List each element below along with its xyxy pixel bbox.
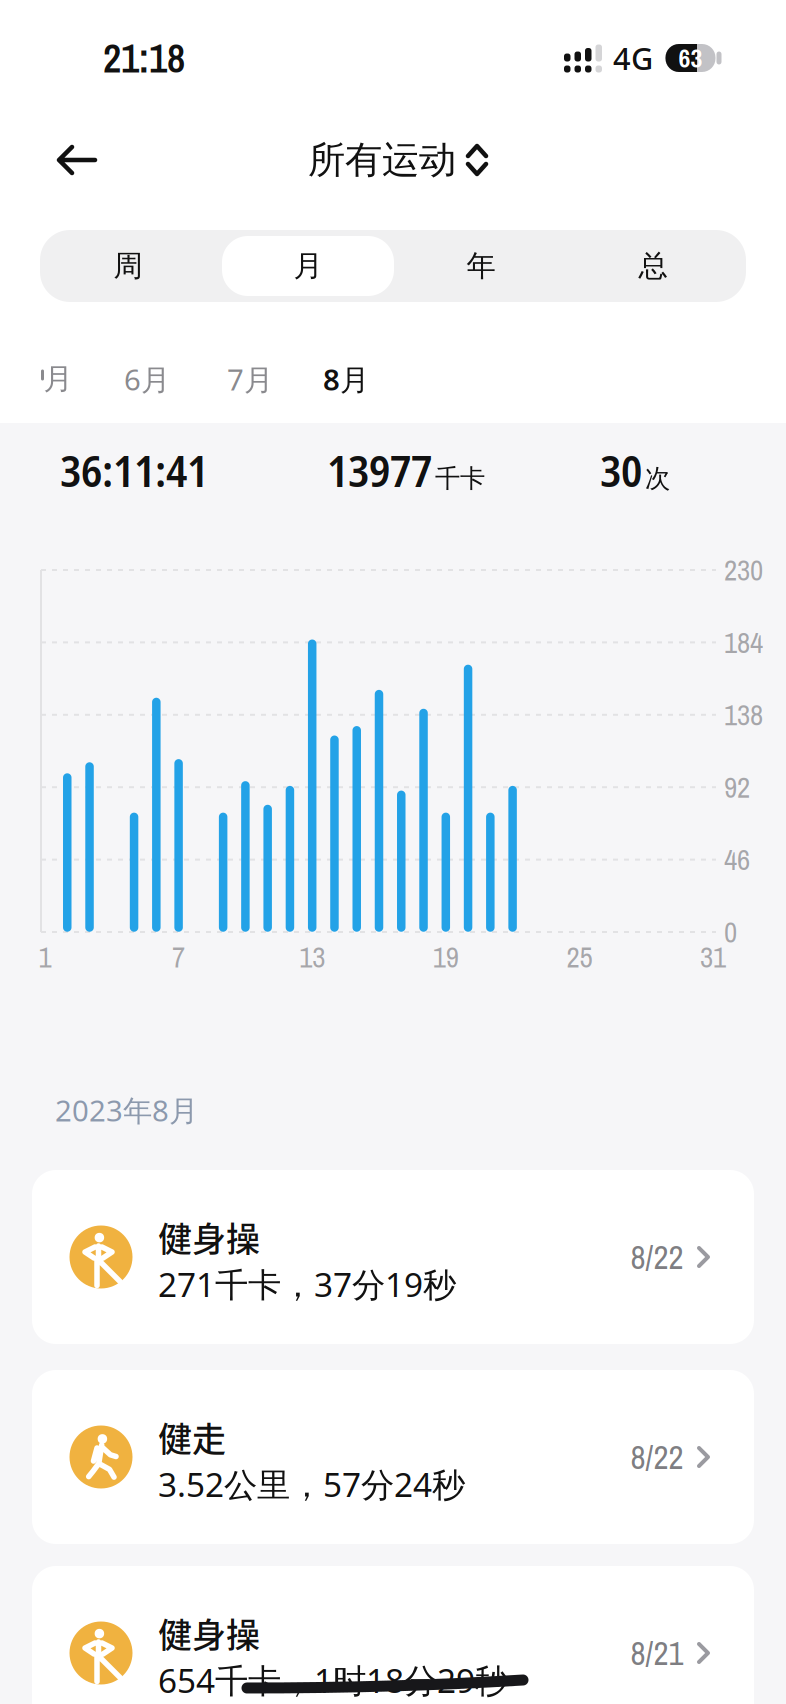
staticText: 46 <box>724 840 750 879</box>
staticText: 总 <box>638 248 667 284</box>
button[interactable]: 周 <box>42 230 214 302</box>
staticText: 13 <box>299 937 325 977</box>
staticText: 8/21 <box>630 1631 683 1675</box>
button[interactable]: 返回 <box>57 144 97 176</box>
staticText: 1 <box>38 937 51 977</box>
staticText: 月 <box>43 361 72 397</box>
staticText: 4G <box>613 38 653 78</box>
staticText: 0 <box>724 912 737 952</box>
staticText: 230 <box>724 550 763 590</box>
staticText: 健走 <box>158 1412 226 1462</box>
staticText: 8月 <box>323 359 369 398</box>
staticText: 30 <box>600 440 642 500</box>
staticText: 7月 <box>227 359 273 398</box>
button[interactable]: 健身操 <box>32 1170 754 1344</box>
button[interactable]: 月 <box>43 349 72 409</box>
staticText: 所有运动 <box>308 137 456 183</box>
staticText: 19 <box>433 937 459 977</box>
staticText: 千卡 <box>435 463 485 494</box>
staticText: 年 <box>466 248 495 284</box>
staticText: 63 <box>678 40 702 75</box>
button[interactable]: 年 <box>395 230 567 302</box>
staticText: 月 <box>293 248 322 284</box>
staticText: 2023年8月 <box>55 1090 198 1129</box>
button[interactable]: 总 <box>567 230 739 302</box>
staticText: 271千卡，37分19秒 <box>158 1262 456 1306</box>
staticText: 138 <box>724 695 763 734</box>
button[interactable]: 健身操 <box>32 1566 754 1704</box>
staticText: 次 <box>645 463 670 494</box>
staticText: 92 <box>724 768 750 807</box>
staticText: 21:18 <box>103 31 185 85</box>
staticText: 健身操 <box>158 1212 260 1262</box>
staticText: 8/22 <box>630 1235 683 1279</box>
staticText: 654千卡，1时18分29秒 <box>158 1658 508 1702</box>
staticText: 184 <box>724 623 763 662</box>
staticText: 8/22 <box>630 1435 683 1479</box>
staticText: 13977 <box>327 440 432 500</box>
button[interactable]: 健走 <box>32 1370 754 1544</box>
staticText: 3.52公里，57分24秒 <box>158 1462 465 1506</box>
staticText: 周 <box>113 248 142 284</box>
button[interactable]: 月 <box>222 230 394 302</box>
staticText: 36:11:41 <box>60 440 208 500</box>
button[interactable]: 所有运动 <box>308 137 488 183</box>
staticText: 6月 <box>124 359 170 398</box>
button[interactable]: 8月 <box>323 349 369 409</box>
button[interactable]: 6月 <box>124 349 170 409</box>
staticText: 健身操 <box>158 1608 260 1658</box>
staticText: 25 <box>566 937 592 977</box>
button[interactable]: 7月 <box>227 349 273 409</box>
staticText: 7 <box>172 937 185 977</box>
staticText: 31 <box>700 937 726 977</box>
